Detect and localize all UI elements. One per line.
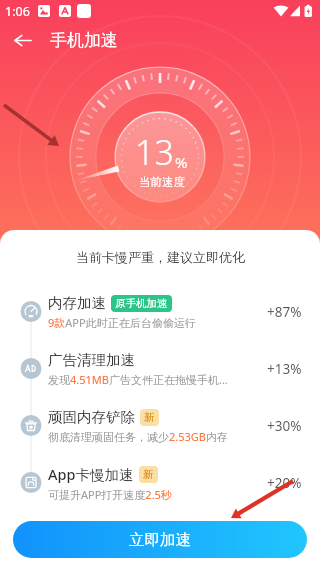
staticText: 彻底清理顽固任务，减少2.53GB内存 (48, 429, 228, 444)
staticText: +87% (267, 303, 302, 321)
staticText: +13% (267, 360, 302, 378)
button[interactable]: Back (4, 22, 40, 58)
staticText: 顽固内存铲除 (48, 408, 135, 426)
staticText: 可提升APP打开速度2.5秒 (48, 487, 172, 502)
staticText: 新 (144, 411, 155, 424)
button[interactable]: 内存加速 (0, 283, 320, 340)
staticText: 发现4.51MB广告文件正在拖慢手机... (48, 372, 228, 387)
staticText: 内存加速 (48, 294, 106, 312)
staticText: 新 (143, 468, 154, 481)
staticText: 原手机加速 (115, 297, 168, 310)
staticText: 9款APP此时正在后台偷偷运行 (48, 315, 196, 330)
staticText: 立即加速 (129, 530, 191, 550)
button[interactable]: App卡慢加速 (0, 454, 320, 511)
button[interactable]: 广告清理加速 (0, 340, 320, 397)
staticText: % (175, 152, 188, 172)
staticText: 当前速度 (139, 175, 185, 189)
staticText: 手机加速 (50, 30, 118, 51)
button[interactable]: 立即加速 (13, 521, 307, 558)
staticText: 1:06 (5, 3, 30, 20)
button[interactable]: 顽固内存铲除 (0, 397, 320, 454)
staticText: 当前卡慢严重，建议立即优化 (76, 249, 245, 265)
staticText: +20% (267, 474, 302, 492)
staticText: 广告清理加速 (48, 351, 135, 369)
staticText: App卡慢加速 (48, 464, 134, 484)
staticText: 13 (135, 129, 174, 175)
staticText: +30% (267, 417, 302, 435)
